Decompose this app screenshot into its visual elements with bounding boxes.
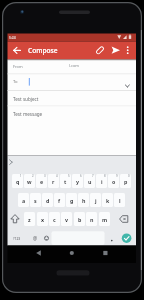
button[interactable]: g [66,193,77,207]
staticText: m [102,216,108,223]
staticText: t [64,178,67,185]
staticText: 1 [20,174,22,178]
staticText: 6 [80,174,82,178]
staticText: Test message [13,111,43,117]
button[interactable]: q [12,174,23,188]
staticText: 5 [68,174,70,178]
staticText: 2 [32,174,34,178]
staticText: a [22,197,26,204]
staticText: h [82,197,86,204]
button[interactable]: ?123 [10,235,24,242]
button[interactable] [10,44,23,57]
staticText: i [101,178,103,185]
staticText: y [76,178,80,185]
button[interactable]: d [42,193,53,207]
button[interactable]: i [96,174,107,188]
button[interactable]: s [30,193,41,207]
button[interactable] [121,233,132,244]
staticText: 3 [44,174,46,178]
button[interactable] [94,44,106,57]
staticText: j [95,197,97,204]
button[interactable]: y [72,174,83,188]
button[interactable]: f [54,193,65,207]
staticText: 7 [92,174,94,178]
button[interactable] [65,247,78,259]
button[interactable]: Compose [28,46,68,55]
button[interactable]: m [99,212,110,226]
staticText: w [27,178,32,185]
staticText: To [13,79,18,85]
button[interactable]: b [74,212,85,226]
button[interactable]: Test subject [13,95,57,102]
button[interactable]: t [60,174,71,188]
staticText: o [112,178,116,185]
button[interactable]: h [78,193,89,207]
button[interactable]: Test message [13,110,57,117]
staticText: 5:24 [9,35,16,39]
button[interactable]: k [102,193,113,207]
button[interactable] [46,231,104,245]
staticText: k [106,197,110,204]
staticText: z [28,216,31,223]
staticText: l [119,197,121,204]
staticText: l.com [69,63,79,68]
button[interactable]: e [36,174,47,188]
button[interactable] [42,231,51,245]
staticText: r [52,178,55,185]
staticText: c [53,216,56,223]
staticText: Test subject [13,96,39,102]
button[interactable]: @ [31,234,40,242]
staticText: From [13,64,23,69]
staticText: v [65,216,69,223]
staticText: f [58,197,61,204]
button[interactable]: r [48,174,59,188]
button[interactable] [120,80,134,92]
staticText: 4 [56,174,58,178]
staticText: g [70,197,74,204]
button[interactable] [109,44,122,57]
staticText: e [40,178,44,185]
button[interactable] [99,247,112,259]
staticText: 9 [116,174,118,178]
button[interactable]: x [37,212,48,226]
button[interactable]: j [90,193,101,207]
staticText: 8 [104,174,106,178]
button[interactable]: c [49,212,60,226]
staticText: p [124,178,128,185]
button[interactable]: w [24,174,35,188]
button[interactable] [107,231,116,245]
staticText: s [34,197,37,204]
button[interactable] [118,212,132,226]
staticText: u [88,178,92,185]
button[interactable]: p [120,174,131,188]
button[interactable]: l [114,193,125,207]
button[interactable]: n [86,212,97,226]
staticText: x [41,216,45,223]
staticText: 0 [128,174,130,178]
staticText: ?123 [13,236,21,241]
button[interactable]: z [24,212,35,226]
staticText: b [78,216,82,223]
staticText: @ [33,235,38,241]
button[interactable]: u [84,174,95,188]
button[interactable]: v [61,212,72,226]
staticText: n [90,216,94,223]
button[interactable]: To [13,78,25,85]
button[interactable]: o [108,174,119,188]
button[interactable] [122,44,133,57]
button[interactable] [8,212,22,226]
staticText: d [46,197,50,204]
button[interactable] [32,247,45,259]
button[interactable]: a [18,193,29,207]
staticText: Compose [28,46,58,55]
staticText: q [16,178,20,185]
